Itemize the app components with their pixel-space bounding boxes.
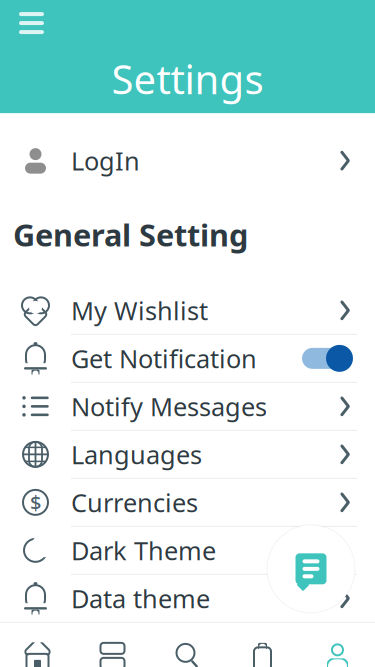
staticText: Notify Messages bbox=[71, 389, 267, 423]
staticText: General Setting bbox=[13, 214, 248, 255]
button[interactable]: Cart bbox=[225, 642, 300, 667]
staticText: Settings bbox=[111, 52, 263, 105]
button[interactable]: Data theme bbox=[0, 575, 375, 622]
button[interactable]: Dark Theme bbox=[0, 527, 375, 574]
button[interactable]: Notify Messages bbox=[0, 383, 375, 430]
button[interactable]: Account bbox=[300, 643, 375, 667]
staticText: $ bbox=[30, 489, 41, 516]
button[interactable]: Chat support bbox=[267, 525, 355, 613]
staticText: Currencies bbox=[71, 485, 198, 519]
button[interactable]: Home bbox=[0, 642, 75, 667]
button[interactable]: My Wishlist bbox=[0, 287, 375, 334]
staticText: Data theme bbox=[71, 581, 210, 615]
button[interactable]: Categories bbox=[75, 642, 150, 667]
staticText: Get Notification bbox=[71, 341, 257, 375]
staticText: Dark Theme bbox=[71, 533, 216, 567]
button[interactable]: Languages bbox=[0, 431, 375, 478]
button[interactable]: Get Notification bbox=[0, 335, 375, 382]
staticText: Languages bbox=[71, 437, 202, 471]
button[interactable]: $ bbox=[0, 479, 375, 526]
button[interactable]: Search bbox=[150, 642, 225, 667]
staticText: My Wishlist bbox=[71, 293, 208, 327]
button[interactable]: Menu bbox=[9, 2, 54, 44]
staticText: LogIn bbox=[71, 144, 140, 177]
button[interactable]: LogIn bbox=[0, 137, 375, 184]
